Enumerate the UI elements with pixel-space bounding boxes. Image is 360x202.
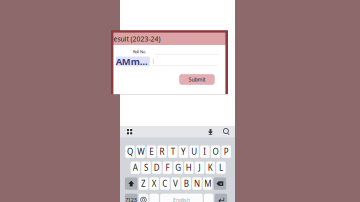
staticText: L (219, 162, 223, 173)
button[interactable]: I (200, 145, 210, 158)
staticText: V (173, 178, 178, 189)
button[interactable]: V (171, 177, 180, 190)
button[interactable]: Submit (179, 74, 215, 85)
staticText: G (175, 162, 181, 173)
button[interactable]: N (192, 177, 202, 190)
staticText: Roll No. (133, 49, 146, 54)
button[interactable]: O (211, 145, 220, 158)
button[interactable]: Switch language (139, 194, 148, 202)
button[interactable]: Voice input (207, 128, 214, 135)
staticText: AMmNt (116, 55, 150, 68)
button[interactable]: W (136, 145, 145, 158)
staticText: English (173, 196, 190, 202)
button[interactable]: , (149, 194, 159, 202)
staticText: H (186, 162, 192, 173)
button[interactable]: P (221, 145, 231, 158)
button[interactable]: E (147, 145, 156, 158)
staticText: Submit (188, 76, 205, 83)
staticText: ?123 (126, 196, 137, 202)
button[interactable]: Z (139, 177, 148, 190)
staticText: M (204, 178, 211, 189)
staticText: K (208, 162, 213, 173)
staticText: R (160, 146, 165, 157)
button[interactable]: H (184, 161, 194, 174)
button[interactable]: K (205, 161, 215, 174)
button[interactable]: R (157, 145, 167, 158)
button[interactable]: L (216, 161, 226, 174)
staticText: N (194, 178, 200, 189)
staticText: E (149, 146, 153, 157)
staticText: Z (141, 178, 146, 189)
staticText: T (171, 146, 175, 157)
button[interactable]: X (149, 177, 159, 190)
button[interactable]: Shift (125, 177, 137, 190)
button[interactable]: Keyboard tools (126, 128, 133, 135)
staticText: D (154, 162, 160, 173)
staticText: I (203, 146, 206, 157)
staticText: W (137, 146, 144, 157)
staticText: O (213, 146, 219, 157)
button[interactable]: C (160, 177, 170, 190)
button[interactable]: Search (223, 128, 230, 135)
button[interactable]: English (160, 194, 203, 202)
button[interactable]: Return (215, 194, 227, 202)
staticText: J (199, 162, 201, 173)
staticText: F (165, 162, 169, 173)
button[interactable]: D (152, 161, 161, 174)
staticText: Q (127, 146, 133, 157)
button[interactable]: T (168, 145, 177, 158)
staticText: U (191, 146, 197, 157)
staticText: C (162, 178, 167, 189)
button[interactable]: A (131, 161, 140, 174)
button[interactable]: U (189, 145, 199, 158)
button[interactable]: Y (179, 145, 188, 158)
button[interactable]: Delete (214, 177, 226, 190)
button[interactable]: ?123 (125, 194, 137, 202)
button[interactable]: B (181, 177, 191, 190)
staticText: Y (181, 146, 186, 157)
staticText: A (133, 162, 138, 173)
staticText: X (152, 178, 157, 189)
button[interactable]: F (163, 161, 172, 174)
button[interactable]: G (173, 161, 183, 174)
staticText: B (184, 178, 189, 189)
staticText: P (224, 146, 229, 157)
button[interactable]: Q (125, 145, 135, 158)
staticText: S (144, 162, 148, 173)
button[interactable]: S (141, 161, 151, 174)
staticText: esult (2023-24) (113, 34, 160, 43)
button[interactable]: J (195, 161, 204, 174)
button[interactable]: M (203, 177, 212, 190)
